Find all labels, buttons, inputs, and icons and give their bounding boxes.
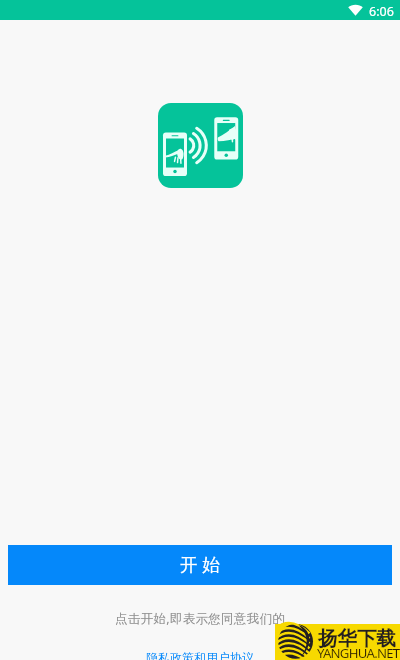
- staticText: 隐私政策和用户协议: [146, 650, 254, 660]
- staticText: 扬华下载: [318, 626, 396, 651]
- other: yanghua.net logo: [275, 624, 400, 660]
- staticText: 点击开始,即表示您同意我们的: [115, 610, 286, 627]
- button[interactable]: 隐私政策和用户协议: [0, 650, 400, 660]
- other: Wi-Fi signal: [348, 4, 363, 16]
- staticText: 开 始: [180, 552, 220, 576]
- staticText: YANGHUA.NET: [317, 644, 400, 660]
- button[interactable]: 开 始: [8, 545, 392, 585]
- staticText: 6:06: [369, 3, 394, 20]
